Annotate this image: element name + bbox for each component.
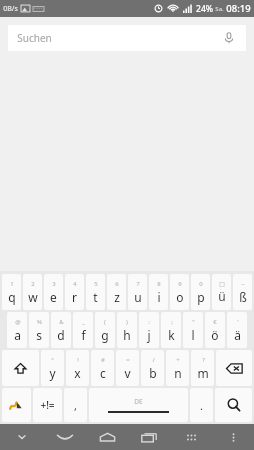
staticText: 2 [31, 280, 35, 288]
button[interactable]: u [128, 274, 147, 310]
staticText: l [191, 327, 195, 343]
button[interactable]: a [7, 312, 27, 348]
button[interactable]: , [64, 388, 87, 422]
staticText: u [134, 289, 142, 305]
staticText: o [176, 289, 184, 305]
staticText: c [100, 365, 106, 381]
staticText: f [81, 327, 86, 343]
button[interactable]: Voice search [221, 30, 237, 46]
staticText: ü [218, 288, 226, 304]
staticText: y [49, 365, 56, 381]
button[interactable]: ü [212, 274, 231, 310]
staticText: 4 [73, 280, 77, 288]
staticText: 7 [136, 280, 140, 288]
staticText: t [93, 289, 98, 305]
button[interactable]: Shift [2, 350, 39, 386]
staticText: □ [219, 280, 225, 287]
button[interactable]: Space [89, 388, 188, 422]
staticText: € [213, 318, 217, 326]
button[interactable]: b [141, 350, 164, 386]
staticText: w [28, 289, 38, 305]
button[interactable]: Apps [170, 424, 212, 450]
button[interactable]: i [149, 274, 168, 310]
staticText: Suchen [17, 31, 52, 45]
button[interactable]: . [190, 388, 213, 422]
button[interactable]: q [2, 274, 21, 310]
button[interactable]: x [66, 350, 89, 386]
staticText: 24% [196, 3, 213, 15]
staticText: # [101, 356, 105, 364]
button[interactable]: Recents [128, 424, 170, 450]
staticText: @ [15, 318, 21, 326]
button[interactable]: +!= [33, 388, 62, 422]
staticText: ; [171, 318, 173, 326]
staticText: ß [239, 289, 247, 305]
staticText: ° [51, 356, 54, 364]
button[interactable]: j [139, 312, 159, 348]
staticText: + [176, 356, 180, 364]
button[interactable]: Back [43, 424, 86, 450]
staticText: ) [126, 318, 128, 326]
button[interactable]: g [95, 312, 115, 348]
button[interactable]: f [73, 312, 93, 348]
button[interactable]: c [91, 350, 114, 386]
button[interactable]: Swipe input [2, 388, 31, 422]
staticText: k [168, 327, 175, 343]
staticText: 9 [178, 280, 182, 288]
button[interactable]: s [29, 312, 49, 348]
staticText: % [37, 318, 42, 326]
staticText: e [50, 289, 57, 305]
staticText: Sa. [215, 5, 224, 13]
button[interactable]: l [183, 312, 203, 348]
staticText: , [74, 398, 77, 413]
button[interactable]: d [51, 312, 71, 348]
staticText: z [114, 289, 120, 305]
button[interactable]: Home [86, 424, 128, 450]
button[interactable]: ä [227, 312, 247, 348]
button[interactable]: r [65, 274, 84, 310]
staticText: +!= [40, 398, 55, 412]
button[interactable]: v [116, 350, 139, 386]
staticText: a [14, 327, 21, 343]
staticText: i [157, 289, 161, 305]
button[interactable]: p [191, 274, 210, 310]
button[interactable]: n [166, 350, 189, 386]
button[interactable]: t [86, 274, 105, 310]
staticText: ~ [241, 280, 245, 288]
staticText: & [59, 318, 64, 326]
staticText: " [192, 318, 195, 326]
staticText: ( [104, 318, 106, 326]
button[interactable]: ö [205, 312, 225, 348]
staticText: q [8, 289, 16, 305]
staticText: 1 [10, 280, 14, 288]
button[interactable]: m [191, 350, 214, 386]
button[interactable]: y [41, 350, 64, 386]
staticText: x [74, 365, 81, 381]
button[interactable]: o [170, 274, 189, 310]
button[interactable]: More options [212, 424, 254, 450]
button[interactable]: Search [215, 388, 252, 422]
button[interactable]: Suchen [8, 25, 246, 51]
staticText: 0 [199, 280, 203, 288]
button[interactable]: k [161, 312, 181, 348]
staticText: h [123, 327, 131, 343]
staticText: j [147, 327, 151, 343]
staticText: ? [202, 356, 205, 364]
staticText: / [152, 356, 155, 364]
button[interactable]: Hide keyboard [0, 424, 43, 450]
staticText: g [101, 327, 109, 343]
button[interactable]: z [107, 274, 126, 310]
staticText: b [149, 365, 157, 381]
staticText: p [197, 289, 205, 305]
staticText: _ [82, 318, 85, 326]
staticText: 08:19 [226, 2, 251, 15]
button[interactable]: ß [233, 274, 252, 310]
staticText: ' [237, 318, 239, 326]
button[interactable]: e [44, 274, 63, 310]
staticText: d [57, 327, 65, 343]
staticText: . [200, 398, 203, 413]
button[interactable]: w [23, 274, 42, 310]
staticText: ö [211, 327, 219, 343]
button[interactable]: Backspace [216, 350, 252, 386]
button[interactable]: h [117, 312, 137, 348]
